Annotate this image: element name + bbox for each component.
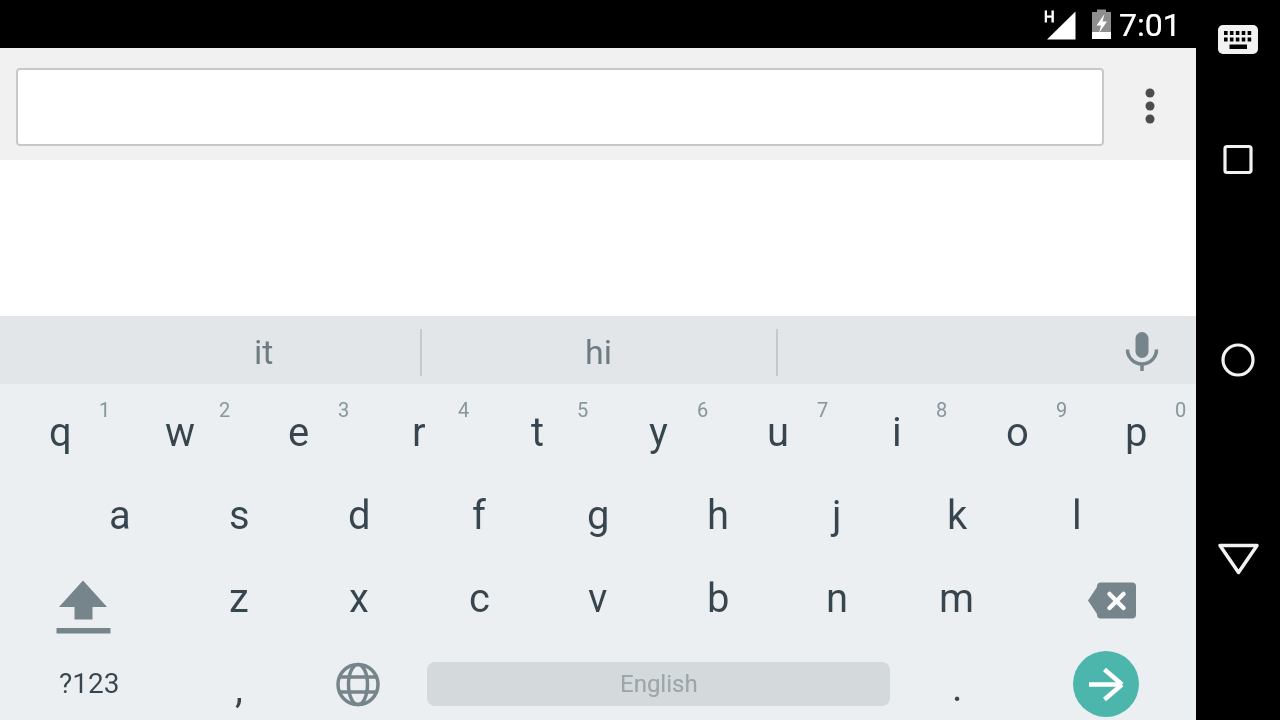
button[interactable]: g (538, 474, 658, 557)
button[interactable]: s (179, 474, 299, 557)
button[interactable] (1126, 78, 1174, 134)
button[interactable]: c (419, 557, 539, 640)
staticText: it (254, 332, 274, 372)
staticText: q (49, 409, 72, 456)
staticText: 8 (936, 398, 948, 421)
button[interactable]: y (598, 391, 718, 474)
staticText: hi (585, 332, 612, 372)
staticText: i (892, 409, 902, 456)
button[interactable] (1206, 128, 1270, 192)
staticText: g (587, 492, 610, 539)
button[interactable] (1206, 527, 1270, 591)
staticText: 7:01 (1119, 6, 1181, 44)
button[interactable]: l (1017, 474, 1137, 557)
button[interactable]: j (777, 474, 897, 557)
staticText: 0 (1175, 398, 1187, 421)
button[interactable]: w (120, 391, 240, 474)
staticText: l (1072, 492, 1082, 539)
button[interactable]: v (538, 557, 658, 640)
staticText: H (1044, 8, 1055, 26)
staticText: w (165, 409, 196, 456)
staticText: r (412, 409, 426, 456)
button[interactable] (1116, 316, 1168, 384)
button[interactable]: z (179, 557, 299, 640)
button[interactable]: d (299, 474, 419, 557)
staticText: 1 (99, 398, 111, 421)
staticText: , (235, 665, 243, 712)
staticText: 6 (697, 398, 709, 421)
staticText: k (947, 492, 968, 539)
button[interactable]: n (777, 557, 897, 640)
button[interactable]: b (658, 557, 778, 640)
button[interactable] (1073, 651, 1139, 717)
staticText: English (620, 670, 698, 698)
button[interactable]: t (478, 391, 598, 474)
button[interactable] (1017, 559, 1196, 642)
staticText: m (939, 575, 975, 622)
staticText: c (469, 575, 490, 622)
staticText: y (649, 409, 668, 456)
button[interactable]: i (837, 391, 957, 474)
staticText: a (109, 492, 131, 539)
button[interactable] (299, 642, 419, 720)
button[interactable]: r (359, 391, 479, 474)
staticText: ?123 (59, 667, 120, 700)
staticText: j (832, 492, 842, 539)
staticText: t (531, 409, 545, 456)
staticText: 9 (1056, 398, 1068, 421)
button[interactable]: o (957, 391, 1077, 474)
staticText: d (348, 492, 371, 539)
staticText: 5 (577, 398, 589, 421)
button[interactable] (60, 316, 420, 384)
button[interactable]: u (718, 391, 838, 474)
staticText: v (588, 575, 608, 622)
button[interactable]: p (1076, 391, 1196, 474)
button[interactable]: . (897, 646, 1017, 720)
staticText: u (767, 409, 790, 456)
staticText: s (229, 492, 250, 539)
staticText: 3 (338, 398, 350, 421)
staticText: o (1006, 409, 1029, 456)
button[interactable] (420, 316, 776, 384)
staticText: . (952, 664, 963, 711)
button[interactable] (1206, 328, 1270, 392)
staticText: p (1125, 409, 1148, 456)
button[interactable] (16, 68, 1104, 146)
staticText: e (288, 409, 310, 456)
button[interactable] (0, 559, 179, 642)
button[interactable]: h (658, 474, 778, 557)
staticText: 2 (219, 398, 231, 421)
staticText: 4 (458, 398, 470, 421)
button[interactable]: a (60, 474, 180, 557)
button[interactable]: e (239, 391, 359, 474)
button[interactable] (1206, 10, 1270, 70)
button[interactable]: English (427, 662, 890, 706)
button[interactable]: x (299, 557, 419, 640)
button[interactable]: ?123 (0, 642, 179, 720)
staticText: x (349, 575, 369, 622)
button[interactable]: , (179, 647, 299, 720)
button[interactable]: k (897, 474, 1017, 557)
staticText: b (707, 575, 730, 622)
button[interactable]: f (419, 474, 539, 557)
staticText: h (707, 492, 730, 539)
staticText: f (472, 492, 486, 539)
button[interactable]: m (897, 557, 1017, 640)
staticText: 7 (817, 398, 829, 421)
staticText: n (826, 575, 849, 622)
staticText: z (229, 575, 249, 622)
button[interactable]: q (0, 391, 120, 474)
